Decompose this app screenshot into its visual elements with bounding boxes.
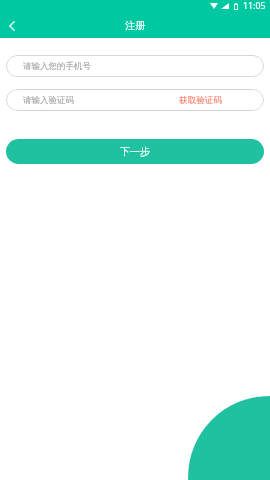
staticText: 注册 (125, 19, 145, 32)
button[interactable]: Back (0, 13, 23, 38)
staticText: 下一步 (120, 145, 150, 158)
button[interactable]: 下一步 (6, 139, 264, 164)
staticText: 请输入验证码 (23, 95, 74, 106)
button[interactable]: 请输入验证码 (6, 89, 264, 111)
button[interactable]: 请输入您的手机号 (6, 55, 264, 77)
staticText: 获取验证码 (179, 95, 222, 106)
staticText: 11:05 (243, 0, 266, 12)
staticText: 请输入您的手机号 (23, 61, 91, 72)
button[interactable]: 获取验证码 (171, 89, 230, 111)
